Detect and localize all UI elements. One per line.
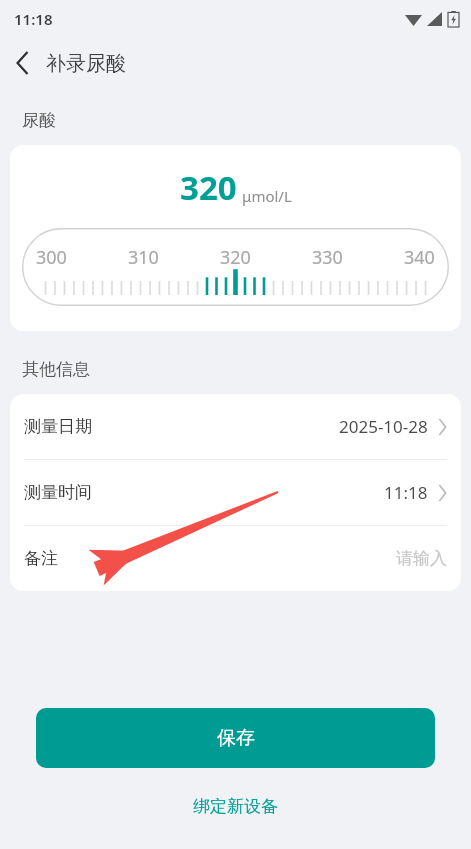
staticText: 300 (36, 245, 67, 270)
staticText: 补录尿酸 (46, 51, 126, 76)
staticText: 尿酸 (22, 110, 56, 131)
button[interactable]: 保存 (36, 708, 435, 768)
button[interactable]: 测量时间 (10, 460, 461, 525)
staticText: 备注 (24, 548, 58, 569)
staticText: 测量时间 (24, 482, 92, 503)
staticText: 2025-10-28 (339, 415, 428, 438)
staticText: 310 (128, 245, 159, 270)
button[interactable]: 测量日期 (10, 394, 461, 459)
staticText: 340 (404, 245, 435, 270)
staticText: 保存 (217, 726, 255, 750)
staticText: 其他信息 (22, 359, 90, 380)
staticText: μmol/L (242, 186, 292, 206)
button[interactable]: 绑定新设备 (0, 790, 471, 823)
button[interactable]: 备注 (10, 526, 461, 591)
staticText: 330 (312, 245, 343, 270)
staticText: 请输入 (396, 548, 447, 569)
staticText: 11:18 (14, 9, 53, 29)
staticText: 11:18 (384, 481, 428, 504)
staticText: 测量日期 (24, 416, 92, 437)
staticText: 320 (220, 245, 251, 270)
button[interactable]: Back (0, 40, 46, 86)
staticText: 绑定新设备 (193, 796, 278, 817)
staticText: 320 (180, 165, 237, 210)
